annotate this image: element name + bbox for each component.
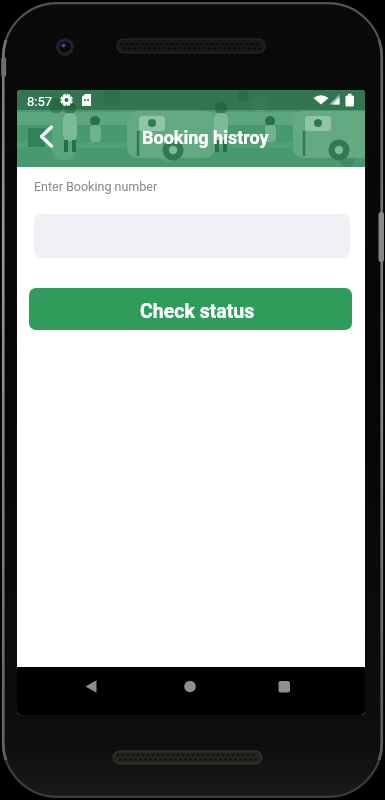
staticText: Enter Booking number [34,179,158,194]
staticText: Check status [140,300,255,323]
staticText: 8:57 [27,94,53,109]
button[interactable] [267,669,301,703]
button[interactable] [74,669,108,703]
staticText: Booking histroy [142,127,269,148]
button[interactable] [173,669,207,703]
button[interactable]: Check status [29,288,352,330]
button[interactable] [25,120,59,154]
